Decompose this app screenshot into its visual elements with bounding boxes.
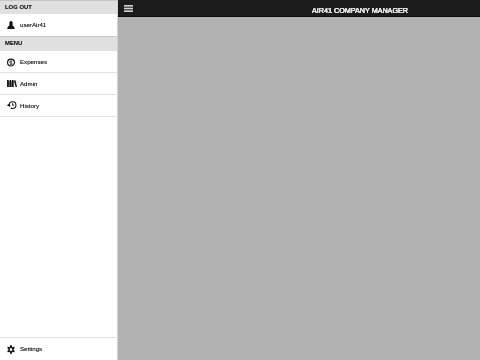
staticText: History [20, 102, 40, 109]
staticText: Admin [20, 80, 38, 87]
button[interactable]: Admin [0, 73, 117, 95]
staticText: userAir41 [20, 21, 47, 28]
staticText: MENU [5, 40, 23, 47]
staticText: userAir41 [20, 21, 47, 28]
staticText: AIR41 COMPANY MANAGER [312, 6, 408, 14]
button[interactable]: Open navigation menu [122, 1, 134, 16]
staticText: Expenses [20, 58, 47, 65]
staticText: LOG OUT [5, 4, 32, 11]
staticText: Expenses [20, 58, 47, 65]
button[interactable]: S [0, 51, 117, 73]
staticText: History [20, 102, 40, 109]
button[interactable]: Settings [0, 338, 117, 360]
staticText: Admin [20, 80, 38, 87]
button[interactable]: userAir41 [0, 14, 117, 36]
staticText: Settings [20, 345, 43, 352]
staticText: Settings [20, 345, 43, 352]
staticText: LOG OUT [5, 4, 32, 11]
button[interactable]: History [0, 95, 117, 117]
staticText: MENU [5, 40, 23, 47]
staticText: S [9, 60, 13, 66]
staticText: AIR41 COMPANY MANAGER [312, 6, 408, 14]
